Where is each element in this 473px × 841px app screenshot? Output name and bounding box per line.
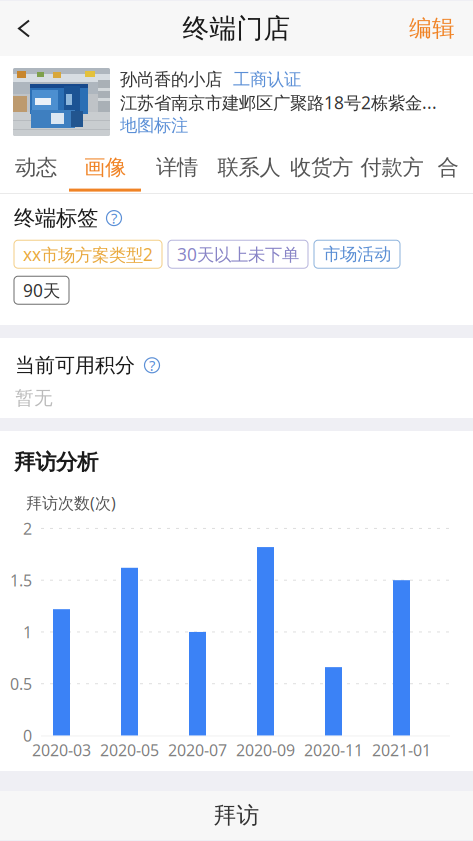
staticText: ? (111, 208, 117, 228)
staticText: 2020-07 (168, 739, 227, 760)
staticText: 江苏省南京市建邺区广聚路18号2栋紫金科技创… (120, 91, 447, 114)
button[interactable]: 收货方 (285, 148, 358, 193)
button[interactable]: 联系人 (213, 148, 285, 193)
staticText: 编辑 (409, 15, 455, 42)
staticText: 2020-03 (32, 739, 91, 760)
staticText: 拜访分析 (14, 449, 98, 475)
button[interactable]: 详情 (141, 148, 213, 193)
staticText: 付款方 (360, 154, 423, 181)
staticText: 30天以上未下单 (177, 243, 299, 266)
staticText: 拜访次数(次) (26, 492, 116, 513)
staticText: 合 (437, 154, 458, 181)
staticText: 收货方 (290, 154, 353, 181)
button[interactable]: 90天 (14, 276, 69, 304)
button[interactable]: 编辑 (409, 1, 473, 56)
staticText: 孙尚香的小店 (120, 69, 222, 90)
staticText: 画像 (84, 154, 126, 181)
staticText: 工商认证 (233, 69, 301, 90)
staticText: 终端门店 (182, 12, 290, 45)
button[interactable]: Back (0, 1, 48, 56)
button[interactable]: 付款方 (358, 148, 426, 193)
staticText: 0.5 (10, 673, 32, 694)
staticText: 1.5 (10, 570, 32, 591)
staticText: 0 (23, 725, 32, 746)
staticText: 地图标注 (120, 115, 188, 136)
staticText: 联系人 (217, 154, 280, 181)
staticText: xx市场方案类型2 (23, 243, 153, 266)
staticText: 终端标签 (14, 205, 98, 231)
staticText: 暂无 (15, 387, 53, 409)
staticText: 2020-11 (304, 739, 363, 760)
staticText: 当前可用积分 (15, 353, 135, 378)
button[interactable]: 拜访 (0, 791, 473, 840)
staticText: 动态 (15, 154, 57, 181)
button[interactable]: 合 (426, 148, 470, 193)
staticText: 1 (23, 621, 32, 642)
button[interactable]: 30天以上未下单 (168, 240, 308, 268)
staticText: 2020-09 (236, 739, 295, 760)
staticText: 2021-01 (372, 739, 431, 760)
button[interactable]: 孙尚香的小店 (0, 56, 473, 148)
button[interactable]: xx市场方案类型2 (14, 240, 162, 268)
staticText: 详情 (156, 154, 198, 181)
button[interactable]: 市场活动 (314, 240, 400, 268)
staticText: 2020-05 (100, 739, 159, 760)
staticText: 拜访 (213, 802, 259, 829)
button[interactable]: 画像 (69, 148, 141, 193)
staticText: ? (149, 355, 155, 375)
staticText: 90天 (23, 279, 60, 302)
staticText: 2 (23, 518, 32, 539)
button[interactable]: 动态 (3, 148, 69, 193)
staticText: 市场活动 (323, 244, 391, 265)
